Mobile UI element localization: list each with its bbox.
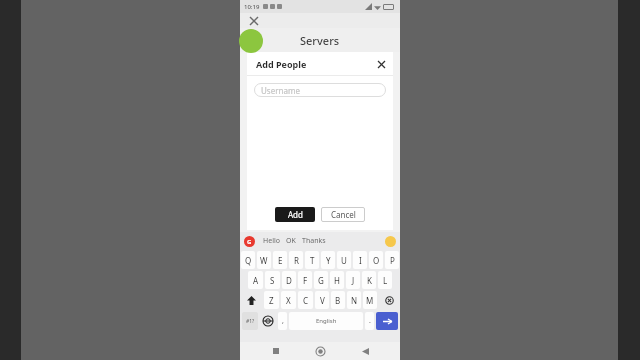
- staticText: 10:19: [244, 3, 260, 11]
- button[interactable]: Y: [321, 251, 335, 269]
- button[interactable]: Thanks: [302, 236, 326, 246]
- staticText: G: [247, 238, 252, 246]
- button[interactable]: N: [347, 291, 361, 309]
- staticText: Hello: [263, 236, 280, 246]
- button[interactable]: Z: [264, 291, 279, 309]
- button[interactable]: ,: [278, 312, 287, 330]
- button[interactable]: Backspace: [379, 291, 399, 309]
- button[interactable]: .: [365, 312, 374, 330]
- staticText: Username: [261, 85, 300, 96]
- button[interactable]: C: [298, 291, 313, 309]
- staticText: L: [383, 275, 388, 286]
- button[interactable]: Cancel: [321, 207, 365, 222]
- staticText: U: [341, 255, 347, 266]
- staticText: A: [253, 275, 259, 286]
- button[interactable]: OK: [286, 236, 296, 246]
- button[interactable]: L: [378, 271, 392, 289]
- staticText: B: [335, 295, 341, 306]
- staticText: M: [366, 295, 374, 306]
- button[interactable]: J: [346, 271, 360, 289]
- button[interactable]: R: [289, 251, 303, 269]
- staticText: Cancel: [331, 209, 356, 220]
- button[interactable]: Recents: [267, 342, 285, 360]
- staticText: G: [318, 275, 324, 286]
- button[interactable]: I: [353, 251, 367, 269]
- button[interactable]: Close dialog: [374, 57, 388, 71]
- staticText: #1?: [246, 318, 255, 325]
- button[interactable]: Username: [254, 83, 386, 97]
- staticText: K: [367, 275, 372, 286]
- button[interactable]: GIF: [244, 236, 255, 247]
- button[interactable]: English: [289, 312, 363, 330]
- staticText: Add: [288, 209, 303, 220]
- button[interactable]: G: [314, 271, 328, 289]
- other: App icon: [239, 29, 263, 53]
- button[interactable]: W: [257, 251, 271, 269]
- staticText: N: [351, 295, 358, 306]
- staticText: .: [369, 316, 371, 326]
- button[interactable]: A: [248, 271, 263, 289]
- button[interactable]: Shift: [241, 291, 262, 309]
- staticText: J: [352, 275, 355, 286]
- staticText: S: [270, 275, 275, 286]
- staticText: P: [390, 255, 395, 266]
- button[interactable]: Emoji: [385, 236, 396, 247]
- staticText: O: [373, 255, 380, 266]
- staticText: W: [260, 255, 268, 266]
- staticText: R: [294, 255, 299, 266]
- staticText: H: [334, 275, 340, 286]
- staticText: C: [303, 295, 309, 306]
- staticText: T: [310, 255, 315, 266]
- button[interactable]: P: [385, 251, 399, 269]
- staticText: F: [303, 275, 308, 286]
- staticText: ,: [282, 316, 284, 326]
- button[interactable]: Language: [260, 312, 276, 330]
- button[interactable]: Home: [311, 342, 329, 360]
- staticText: English: [316, 317, 337, 325]
- button[interactable]: B: [331, 291, 345, 309]
- button[interactable]: K: [362, 271, 376, 289]
- button[interactable]: M: [363, 291, 377, 309]
- button[interactable]: H: [330, 271, 344, 289]
- staticText: Q: [245, 255, 252, 266]
- button[interactable]: S: [265, 271, 280, 289]
- button[interactable]: #1?: [242, 312, 258, 330]
- button[interactable]: O: [369, 251, 383, 269]
- button[interactable]: F: [298, 271, 312, 289]
- button[interactable]: Close: [246, 13, 261, 28]
- button[interactable]: V: [315, 291, 329, 309]
- button[interactable]: X: [281, 291, 296, 309]
- staticText: Servers: [300, 33, 340, 48]
- button[interactable]: D: [282, 271, 296, 289]
- button[interactable]: U: [337, 251, 351, 269]
- staticText: V: [320, 295, 325, 306]
- button[interactable]: E: [273, 251, 287, 269]
- button[interactable]: Q: [241, 251, 255, 269]
- staticText: Z: [269, 295, 274, 306]
- button[interactable]: Enter: [376, 312, 398, 330]
- button[interactable]: Back: [356, 342, 374, 360]
- staticText: OK: [286, 236, 296, 246]
- staticText: I: [359, 255, 362, 266]
- staticText: D: [286, 275, 292, 286]
- staticText: E: [278, 255, 283, 266]
- button[interactable]: T: [305, 251, 319, 269]
- staticText: X: [286, 295, 291, 306]
- button[interactable]: Add: [275, 207, 315, 222]
- button[interactable]: Hello: [263, 236, 280, 246]
- staticText: Thanks: [302, 236, 326, 246]
- staticText: Y: [326, 255, 331, 266]
- staticText: Add People: [256, 58, 307, 70]
